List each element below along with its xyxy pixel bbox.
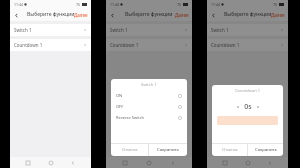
button[interactable]: Back	[168, 158, 178, 168]
button[interactable]: Back	[265, 158, 275, 168]
button[interactable]: Home	[243, 158, 253, 168]
staticText: 76	[177, 2, 182, 7]
button[interactable]: Recents	[220, 158, 230, 168]
button[interactable]: Switch 1	[207, 24, 288, 36]
staticText: 11:44	[110, 2, 119, 7]
staticText: Сохранить	[255, 147, 277, 153]
staticText: Выберите функции	[224, 11, 272, 18]
staticText: Countdown 1	[235, 88, 261, 93]
staticText: Switch 1	[141, 82, 157, 87]
button[interactable]: Далее	[74, 12, 88, 18]
button[interactable]: ON	[111, 90, 187, 101]
staticText: Далее	[271, 12, 285, 18]
button[interactable]: Back	[207, 9, 219, 21]
staticText: Отмена	[122, 147, 138, 153]
button[interactable]: Home	[46, 158, 56, 168]
button[interactable]: Back	[10, 9, 22, 21]
staticText: Сохранить	[157, 147, 179, 153]
staticText: 0s	[244, 102, 252, 112]
staticText: Countdown 1	[211, 42, 240, 48]
staticText: OFF	[116, 104, 124, 109]
button[interactable]: OFF	[111, 101, 187, 112]
button[interactable]: Back	[106, 9, 118, 21]
staticText: Reverse Switch	[116, 115, 145, 120]
button[interactable]: Switch 1	[106, 24, 192, 36]
button[interactable]: Back	[68, 158, 78, 168]
staticText: Switch 1	[110, 27, 128, 33]
button[interactable]: Далее	[271, 12, 285, 18]
button[interactable]: Recents	[23, 158, 33, 168]
staticText: Выберите функции	[27, 11, 75, 18]
staticText: 11:44	[14, 2, 23, 7]
button[interactable]: Отмена	[212, 144, 247, 156]
button[interactable]: Recents	[120, 158, 130, 168]
button[interactable]: Сохранить	[248, 144, 283, 156]
staticText: ON	[116, 93, 123, 98]
button[interactable]: Home	[144, 158, 154, 168]
button[interactable]: Далее	[175, 12, 189, 18]
staticText: 11:44	[211, 2, 220, 7]
button[interactable]: Countdown 1	[106, 39, 192, 51]
staticText: Countdown 1	[14, 42, 43, 48]
button[interactable]: Countdown 1	[207, 39, 288, 51]
staticText: Отмена	[222, 147, 238, 153]
staticText: Switch 1	[14, 27, 32, 33]
staticText: 76	[76, 2, 81, 7]
button[interactable]: Reverse Switch	[111, 112, 187, 123]
staticText: Далее	[74, 12, 88, 18]
staticText: 76	[273, 2, 278, 7]
staticText: Switch 1	[211, 27, 229, 33]
button[interactable]: Countdown 1	[10, 39, 91, 51]
staticText: Countdown 1	[110, 42, 139, 48]
staticText: Выберите функции	[125, 11, 173, 18]
button[interactable]: Сохранить	[149, 144, 187, 156]
button[interactable]: Отмена	[111, 144, 148, 156]
button[interactable]: Switch 1	[10, 24, 91, 36]
staticText: Далее	[175, 12, 189, 18]
